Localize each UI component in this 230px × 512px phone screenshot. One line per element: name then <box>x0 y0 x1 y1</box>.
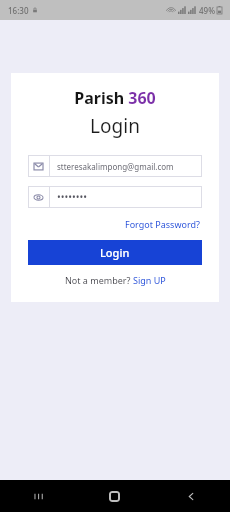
staticText: Sign UP <box>133 274 166 286</box>
button[interactable]: Recents <box>0 480 76 512</box>
staticText: •••••••• <box>57 190 88 204</box>
staticText: Forgot Password? <box>125 218 200 230</box>
staticText: stteresakalimpong@gmail.com <box>57 161 174 172</box>
staticText: Login <box>100 245 130 260</box>
staticText: Not a member? <box>65 274 133 286</box>
staticText: Parish 360 <box>28 87 202 109</box>
button[interactable]: Email <box>28 155 202 177</box>
button[interactable]: Show password <box>28 186 202 208</box>
button[interactable]: Back <box>153 480 230 512</box>
staticText: 16:30 <box>8 5 29 16</box>
other: Email <box>28 155 49 177</box>
staticText: Login <box>28 113 202 139</box>
button[interactable]: Home <box>76 480 153 512</box>
other: Show password <box>28 186 49 208</box>
button[interactable]: Forgot Password? <box>123 217 202 231</box>
staticText: 49% <box>199 5 215 16</box>
button[interactable]: Login <box>28 240 202 265</box>
button[interactable]: Sign UP <box>133 274 166 286</box>
